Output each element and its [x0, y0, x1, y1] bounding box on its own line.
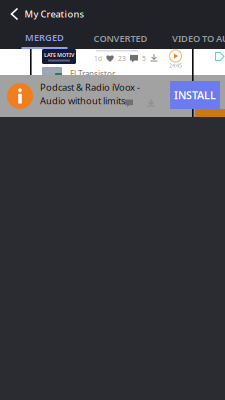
button[interactable]: Back	[2, 0, 24, 29]
staticText: 23	[118, 54, 126, 63]
staticText: LATE MOTIV	[44, 51, 74, 59]
staticText: 24:45	[169, 62, 182, 69]
staticText: 5	[142, 54, 146, 63]
staticText: INSTALL	[174, 88, 216, 102]
staticText: VIDEO TO AU	[172, 32, 225, 45]
button[interactable]: INSTALL	[170, 81, 220, 109]
button[interactable]: MERGED	[8, 28, 80, 49]
staticText: MERGED	[25, 31, 64, 44]
staticText: My Creations	[24, 8, 84, 20]
button[interactable]: VIDEO TO AU	[160, 28, 225, 49]
staticText: El Transistor	[70, 69, 115, 79]
staticText: Podcast & Radio iVoox -	[40, 81, 140, 93]
staticText: Audio without limits	[40, 94, 125, 107]
button[interactable]: CONVERTED	[80, 28, 160, 49]
staticText: CONVERTED	[93, 32, 147, 45]
staticText: 1d	[94, 54, 102, 63]
